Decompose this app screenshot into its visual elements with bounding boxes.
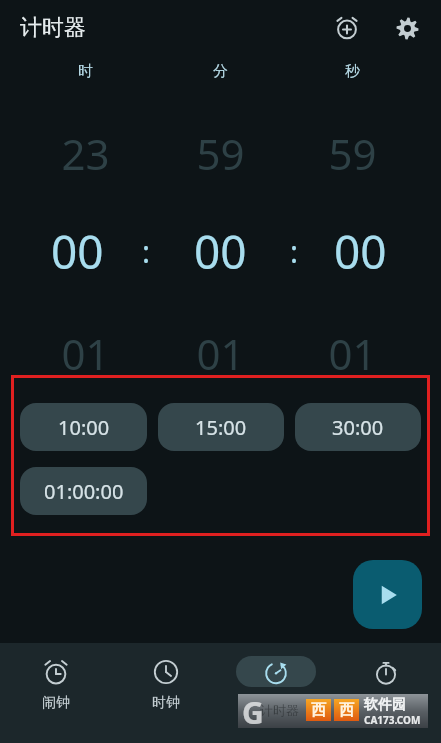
staticText: 计时器 [255,694,297,712]
button[interactable]: 15:00 [158,403,284,451]
staticText: 秒表 [372,694,400,712]
staticText: 时 [78,62,93,81]
staticText: 01:00:00 [44,478,124,505]
staticText: 59 [328,125,377,182]
staticText: 闹钟 [42,694,70,712]
staticText: 01 [196,325,245,382]
staticText: 计时器 [260,702,299,718]
button[interactable]: Start timer [353,560,422,629]
staticText: 秒 [345,62,360,81]
button[interactable]: Settings [385,6,429,50]
staticText: 计时器 [20,14,86,42]
staticText: 软件园 [364,696,406,714]
staticText: 00 [194,220,247,283]
button[interactable]: 01:00:00 [20,467,147,515]
staticText: 01 [328,325,377,382]
staticText: 10:00 [58,414,110,441]
button[interactable]: 闹钟 [0,643,111,712]
staticText: 西 [311,701,326,720]
staticText: 分 [213,62,228,81]
staticText: : [290,231,299,272]
button[interactable]: Add alarm [325,6,369,50]
staticText: 59 [196,125,245,182]
button[interactable]: 计时器 [221,643,331,712]
staticText: G [242,692,264,726]
staticText: 00 [334,220,387,283]
staticText: 15:00 [195,414,247,441]
staticText: 00 [51,220,104,283]
staticText: 01 [61,325,110,382]
button[interactable]: 30:00 [295,403,421,451]
staticText: 30:00 [332,414,384,441]
staticText: 西 [339,701,354,720]
staticText: : [142,231,151,272]
staticText: CA173.COM [364,713,421,727]
staticText: 时钟 [152,694,180,712]
button[interactable]: 秒表 [331,643,441,712]
staticText: 23 [61,125,110,182]
button[interactable]: 10:00 [20,403,147,451]
button[interactable]: 时钟 [111,643,221,712]
